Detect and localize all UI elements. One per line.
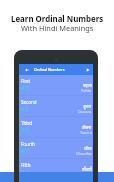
staticText: तीसरा [82, 124, 92, 130]
button[interactable]: Back [23, 66, 30, 73]
staticText: Ordinal Numbers [34, 67, 65, 72]
button[interactable]: Fifth [19, 159, 93, 180]
staticText: Third [21, 120, 32, 126]
staticText: चौथा [84, 145, 92, 151]
button[interactable]: First [19, 75, 93, 96]
staticText: दूसरा [83, 103, 92, 109]
staticText: पहला [83, 82, 92, 88]
button[interactable]: Play all [83, 65, 92, 74]
staticText: Second [21, 99, 37, 105]
staticText: Pehla [81, 88, 92, 93]
staticText: Fifth [21, 162, 31, 168]
staticText: Doosra [78, 109, 92, 114]
button[interactable]: Third [19, 117, 93, 138]
staticText: Chautha [76, 151, 92, 156]
staticText: Fourth [21, 141, 36, 147]
button[interactable]: Second [19, 96, 93, 117]
staticText: पाँचवाँ [82, 166, 92, 172]
staticText: Teesra [80, 130, 92, 135]
button[interactable]: Fourth [19, 138, 93, 159]
staticText: With Hindi Meanings [21, 23, 94, 33]
staticText: Learn Ordinal Numbers [11, 14, 104, 25]
staticText: First [21, 78, 31, 84]
